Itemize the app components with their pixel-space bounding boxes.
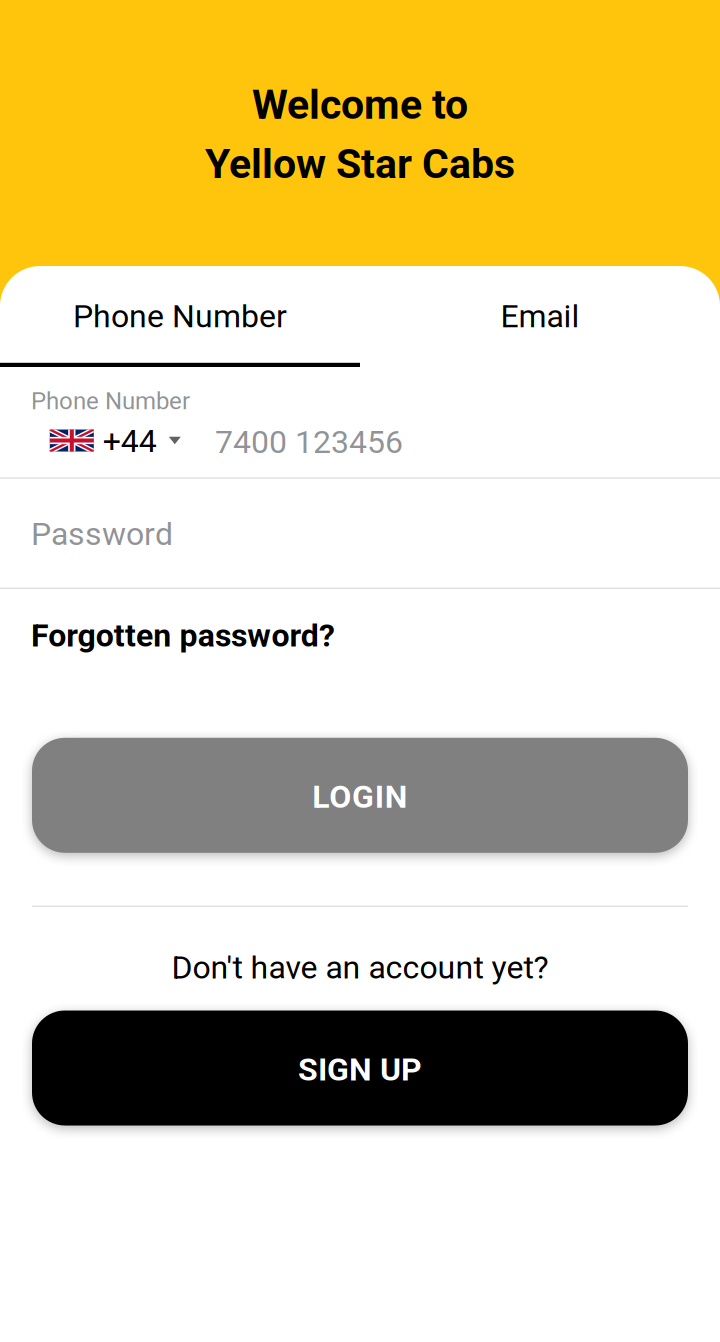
- staticText: Phone Number: [73, 298, 287, 335]
- textField[interactable]: [205, 367, 720, 477]
- button[interactable]: Phone Number: [0, 270, 360, 367]
- button[interactable]: SIGN UP: [32, 1010, 688, 1125]
- button[interactable]: Country code +44: [50, 414, 188, 466]
- staticText: Welcome to: [252, 81, 468, 129]
- staticText: +44: [103, 422, 157, 460]
- staticText: SIGN UP: [298, 1051, 422, 1088]
- staticText: LOGIN: [312, 778, 408, 815]
- staticText: Password: [31, 515, 173, 553]
- secureTextField[interactable]: [0, 479, 720, 588]
- button[interactable]: Forgotten password?: [31, 615, 343, 657]
- button[interactable]: Email: [360, 270, 720, 367]
- staticText: 7400 123456: [215, 423, 403, 461]
- staticText: Forgotten password?: [31, 617, 335, 654]
- staticText: Don't have an account yet?: [171, 949, 548, 986]
- staticText: Yellow Star Cabs: [205, 140, 515, 188]
- staticText: Phone Number: [31, 387, 190, 415]
- staticText: Email: [500, 298, 579, 335]
- button[interactable]: LOGIN: [32, 738, 688, 853]
